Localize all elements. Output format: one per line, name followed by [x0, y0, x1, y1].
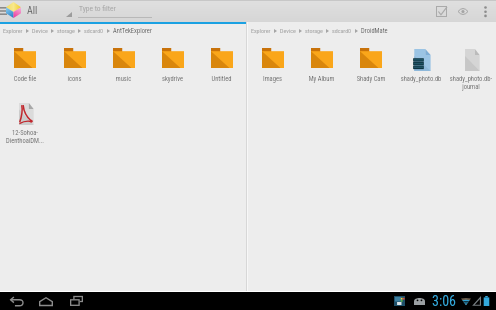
button[interactable]: Shady Cam [346, 37, 396, 91]
staticText: Shady Cam [347, 75, 395, 83]
button[interactable]: Select all [434, 0, 449, 22]
staticText: shady_photo.db [397, 75, 445, 83]
button[interactable]: sdcard0 [84, 27, 104, 34]
button[interactable]: AntTekExplorer [113, 27, 152, 35]
button[interactable]: Preview [452, 0, 474, 22]
button[interactable]: Code file [0, 37, 50, 91]
button[interactable]: Recents [64, 292, 88, 310]
staticText: music [100, 75, 147, 83]
button[interactable]: Home [34, 292, 58, 310]
button[interactable]: DroidMate [361, 27, 388, 35]
button[interactable]: 12-Sohoa-DienthoaiDM... [0, 91, 50, 145]
staticText: Code file [1, 75, 49, 83]
button[interactable]: music [99, 37, 148, 91]
button[interactable]: Explorer [251, 27, 271, 34]
staticText: skydrive [149, 75, 196, 83]
button[interactable]: Menu [0, 0, 7, 22]
button[interactable]: Untitled [197, 37, 246, 91]
button[interactable]: Device [32, 27, 48, 34]
button[interactable]: storage [57, 27, 75, 34]
staticText: icons [51, 75, 98, 83]
button[interactable]: icons [50, 37, 99, 91]
button[interactable]: Images [248, 37, 297, 91]
button[interactable]: More options [474, 0, 496, 22]
staticText: All [27, 5, 38, 17]
button[interactable]: skydrive [148, 37, 197, 91]
staticText: Images [249, 75, 296, 83]
button[interactable]: Device [280, 27, 296, 34]
button[interactable]: Explorer [3, 27, 23, 34]
staticText: shady_photo.db-journal [447, 75, 495, 91]
staticText: 3:06 [432, 293, 457, 309]
button[interactable]: shady_photo.db-journal [446, 37, 496, 91]
staticText: Untitled [198, 75, 245, 83]
button[interactable]: storage [305, 27, 323, 34]
button[interactable]: My Album [297, 37, 346, 91]
button[interactable]: shady_photo.db [396, 37, 446, 91]
button[interactable]: sdcard0 [332, 27, 352, 34]
staticText: Type to filter [79, 4, 116, 13]
staticText: 12-Sohoa-DienthoaiDM... [1, 129, 49, 145]
button[interactable]: Back [4, 292, 28, 310]
staticText: My Album [298, 75, 345, 83]
